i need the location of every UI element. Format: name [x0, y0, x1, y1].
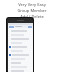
button[interactable] [8, 49, 33, 52]
button[interactable] [8, 61, 33, 64]
button[interactable] [8, 45, 33, 48]
button[interactable] [8, 41, 33, 44]
staticText: Add / Delete [20, 14, 44, 19]
button[interactable]: Menu [9, 26, 14, 28]
staticText: Group Member [17, 8, 47, 13]
button[interactable]: Add member [28, 26, 32, 28]
button[interactable] [8, 37, 33, 40]
button[interactable] [8, 29, 33, 32]
staticText: Very Very Easy [18, 2, 46, 7]
button[interactable] [8, 53, 33, 56]
button[interactable] [8, 57, 33, 60]
button[interactable] [8, 33, 33, 36]
button[interactable] [8, 65, 33, 68]
button[interactable] [8, 69, 33, 72]
